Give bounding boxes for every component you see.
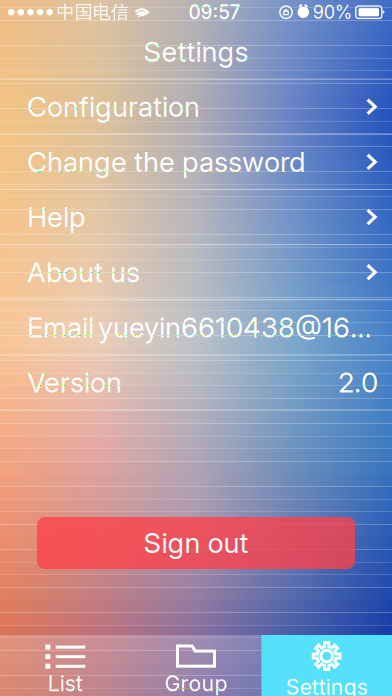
- staticText: Settings: [286, 674, 368, 696]
- button[interactable]: Settings: [261, 635, 392, 696]
- button[interactable]: Group: [131, 635, 261, 696]
- button[interactable]: About us: [0, 245, 392, 299]
- staticText: Settings: [143, 35, 248, 68]
- staticText: yueyin6610438@163.com: [98, 310, 378, 344]
- button[interactable]: Help: [0, 190, 392, 244]
- staticText: 09:57: [189, 1, 241, 24]
- button[interactable]: List: [0, 635, 131, 696]
- button[interactable]: Change the password: [0, 135, 392, 189]
- staticText: Change the password: [27, 145, 305, 179]
- staticText: About us: [27, 255, 140, 289]
- staticText: 中国电信: [57, 1, 129, 24]
- staticText: 2.0: [338, 366, 378, 399]
- staticText: Help: [27, 200, 85, 234]
- staticText: Sign out: [143, 526, 248, 560]
- staticText: Email: [27, 310, 94, 344]
- staticText: 90%: [313, 1, 353, 23]
- staticText: Version: [27, 366, 122, 399]
- staticText: List: [48, 671, 83, 696]
- button[interactable]: Sign out: [37, 517, 355, 569]
- staticText: Group: [164, 671, 227, 696]
- button[interactable]: Configuration: [0, 80, 392, 134]
- staticText: Configuration: [27, 90, 200, 123]
